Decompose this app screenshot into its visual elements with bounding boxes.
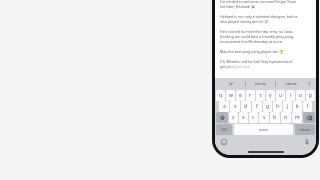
button[interactable]: l: [303, 101, 312, 112]
button[interactable]: a: [219, 101, 229, 112]
button[interactable]: 123: [216, 124, 232, 135]
staticText: I'm excited to welcome our new Design Te…: [220, 0, 297, 4]
staticText: enty of rest.: [230, 64, 251, 69]
button[interactable]: g: [263, 101, 272, 112]
staticText: return: [300, 127, 311, 132]
button[interactable]: space: [234, 124, 293, 135]
staticText: y: [269, 92, 272, 99]
button[interactable]: o: [296, 90, 305, 101]
staticText: He's excited to meet the new crew, so I …: [220, 29, 293, 34]
staticText: n: [284, 114, 288, 121]
staticText: plenty: [255, 81, 266, 86]
staticText: May the best ping pong player win 🏆: [220, 49, 284, 54]
button[interactable]: f: [252, 101, 262, 112]
button[interactable]: u: [276, 90, 285, 101]
staticText: j: [287, 103, 289, 110]
staticText: member, Hetland! 🎉: [220, 4, 256, 9]
button[interactable]: Shift: [216, 112, 228, 123]
button[interactable]: w: [226, 90, 235, 101]
staticText: p: [309, 92, 313, 99]
staticText: also played varsity tennis! 🎾: [220, 19, 269, 24]
staticText: thinking we could host a friendly ping p…: [220, 34, 294, 39]
button[interactable]: "pl": [217, 78, 245, 89]
staticText: 123: [221, 127, 227, 132]
staticText: space: [259, 127, 269, 132]
button[interactable]: b: [270, 112, 280, 123]
button[interactable]: k: [293, 101, 302, 112]
staticText: g: [266, 103, 270, 110]
button[interactable]: Collapse keyboard: [305, 78, 314, 89]
staticText: i: [290, 92, 292, 99]
button[interactable]: i: [286, 90, 295, 101]
button[interactable]: Backspace: [303, 112, 315, 123]
button[interactable]: e: [236, 90, 245, 101]
staticText: tournament this Wednesday at noon.: [220, 39, 283, 44]
button[interactable]: z: [229, 112, 238, 123]
button[interactable]: placed: [276, 78, 305, 89]
staticText: z: [232, 114, 235, 121]
staticText: Hetland is not only a talented designer,…: [220, 14, 298, 19]
staticText: e: [239, 92, 242, 99]
button[interactable]: m: [292, 112, 302, 123]
staticText: placed: [285, 81, 297, 86]
button[interactable]: r: [246, 90, 255, 101]
staticText: m: [295, 114, 300, 121]
staticText: c: [252, 114, 255, 121]
staticText: P.S. Weather will be hot! Stay hydrated …: [220, 59, 292, 64]
button[interactable]: y: [266, 90, 275, 101]
staticText: a: [223, 103, 226, 110]
staticText: d: [244, 103, 248, 110]
button[interactable]: x: [239, 112, 248, 123]
button[interactable]: h: [273, 101, 282, 112]
staticText: v: [263, 114, 266, 121]
staticText: f: [256, 103, 258, 110]
staticText: s: [234, 103, 237, 110]
staticText: get pl: [220, 64, 230, 69]
staticText: w: [229, 92, 233, 99]
button[interactable]: c: [249, 112, 258, 123]
button[interactable]: Emoji: [220, 138, 228, 146]
staticText: l: [307, 103, 309, 110]
staticText: "pl": [228, 81, 234, 86]
staticText: u: [279, 92, 283, 99]
staticText: o: [299, 92, 303, 99]
button[interactable]: v: [259, 112, 269, 123]
staticText: k: [296, 103, 299, 110]
button[interactable]: n: [281, 112, 291, 123]
button[interactable]: d: [241, 101, 251, 112]
button[interactable]: t: [256, 90, 265, 101]
staticText: r: [249, 92, 252, 99]
button[interactable]: Dictation: [303, 138, 311, 146]
staticText: q: [219, 92, 223, 99]
staticText: x: [242, 114, 245, 121]
staticText: b: [273, 114, 277, 121]
button[interactable]: q: [216, 90, 225, 101]
button[interactable]: plenty: [246, 78, 275, 89]
button[interactable]: p: [306, 90, 315, 101]
staticText: h: [276, 103, 280, 110]
staticText: t: [260, 92, 262, 99]
button[interactable]: return: [295, 124, 315, 135]
button[interactable]: j: [283, 101, 292, 112]
button[interactable]: s: [230, 101, 240, 112]
